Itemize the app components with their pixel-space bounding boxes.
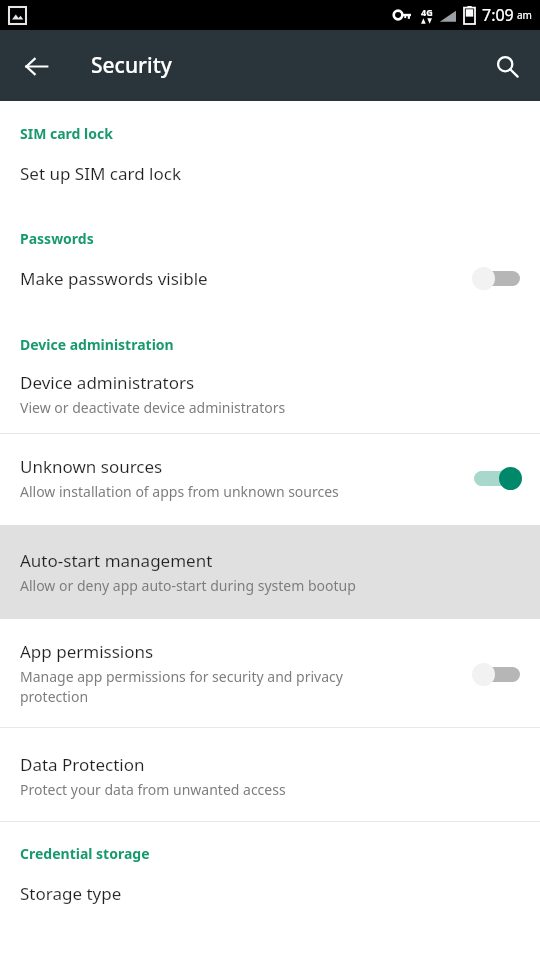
staticText: Allow or deny app auto-start during syst…	[20, 576, 356, 595]
button[interactable]: Data Protection	[0, 728, 540, 821]
staticText: 4G	[421, 6, 433, 18]
staticText: Unknown sources	[20, 455, 163, 478]
staticText: Manage app permissions for security and …	[20, 667, 400, 707]
staticText: Storage type	[20, 882, 122, 905]
staticText: Passwords	[20, 229, 94, 248]
staticText: Set up SIM card lock	[20, 162, 181, 185]
staticText: Make passwords visible	[20, 267, 208, 290]
button[interactable]: Unknown sources	[0, 434, 540, 525]
button[interactable]: On	[472, 465, 522, 491]
button[interactable]: App permissions	[0, 619, 540, 727]
staticText: App permissions	[20, 640, 154, 663]
button[interactable]: Off	[472, 265, 522, 291]
button[interactable]: Auto-start management	[0, 525, 540, 619]
button[interactable]: Set up SIM card lock	[0, 143, 540, 207]
staticText: Device administrators	[20, 371, 195, 394]
staticText: Security	[91, 51, 172, 80]
staticText: am	[517, 8, 532, 22]
staticText: SIM card lock	[20, 124, 113, 143]
button[interactable]: Make passwords visible	[0, 248, 540, 313]
button[interactable]: Off	[472, 661, 522, 687]
button[interactable]: Navigate up	[12, 42, 60, 90]
staticText: Allow installation of apps from unknown …	[20, 482, 440, 501]
staticText: View or deactivate device administrators	[20, 398, 286, 417]
staticText: Protect your data from unwanted access	[20, 780, 286, 799]
button[interactable]: Storage type	[0, 863, 540, 925]
button[interactable]: Search	[483, 42, 531, 90]
staticText: Credential storage	[20, 844, 150, 863]
staticText: 7:09	[482, 4, 514, 26]
staticText: Device administration	[20, 335, 174, 354]
staticText: Auto-start management	[20, 549, 213, 572]
staticText: Data Protection	[20, 753, 145, 776]
button[interactable]: Device administrators	[0, 354, 540, 433]
